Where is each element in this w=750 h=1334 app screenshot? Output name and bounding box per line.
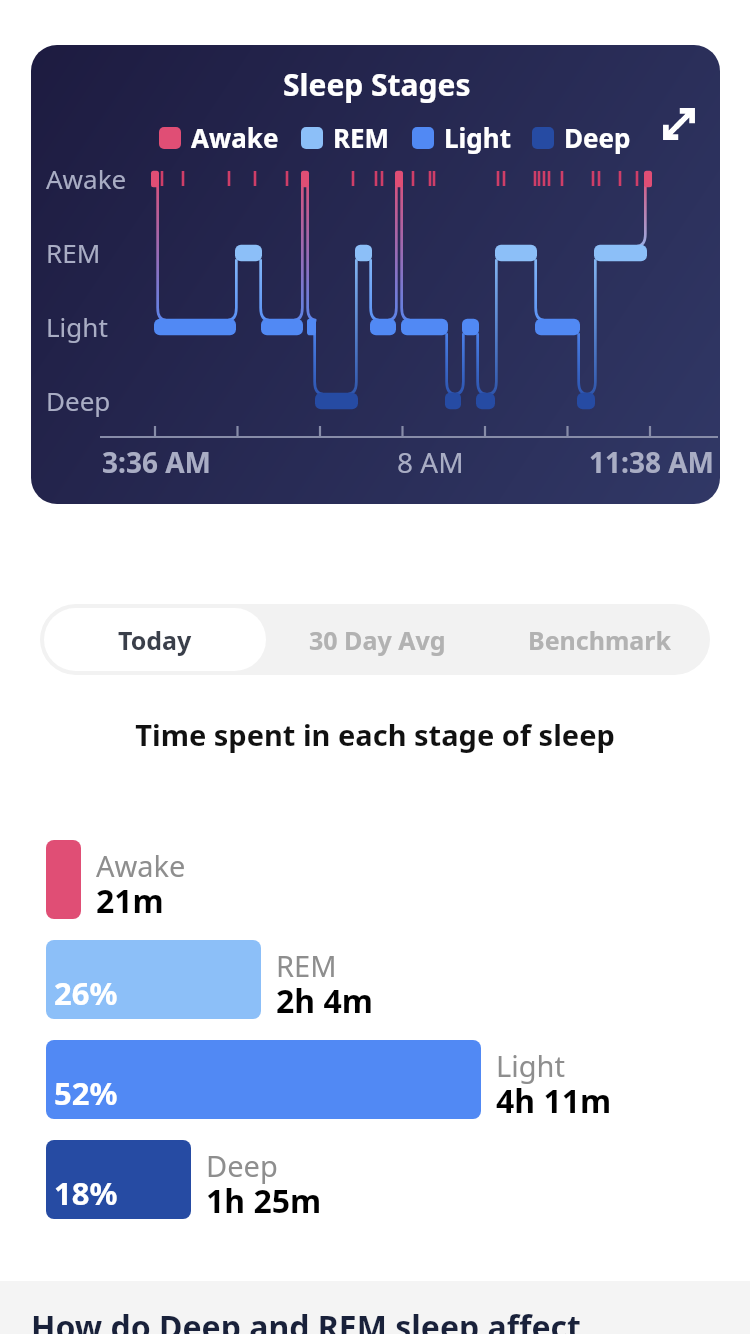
staticText: Awake bbox=[191, 120, 279, 155]
staticText: How do Deep and REM sleep affect bbox=[31, 1305, 581, 1334]
staticText: 52% bbox=[54, 1072, 118, 1114]
staticText: 8 AM bbox=[397, 443, 464, 481]
staticText: Sleep Stages bbox=[283, 64, 471, 105]
button[interactable]: 30 Day Avg bbox=[266, 604, 488, 675]
staticText: Awake bbox=[96, 846, 186, 885]
staticText: 21m bbox=[96, 879, 164, 923]
staticText: 26% bbox=[54, 972, 118, 1014]
staticText: Light bbox=[46, 309, 108, 344]
staticText: 3:36 AM bbox=[102, 443, 211, 481]
staticText: 1h 25m bbox=[206, 1179, 322, 1223]
staticText: Benchmark bbox=[528, 623, 671, 657]
button[interactable]: Expand chart bbox=[656, 101, 702, 147]
staticText: Deep bbox=[46, 383, 111, 418]
staticText: 4h 11m bbox=[496, 1079, 612, 1123]
staticText: Today bbox=[118, 623, 192, 657]
staticText: Light bbox=[496, 1046, 565, 1085]
staticText: Awake bbox=[46, 161, 127, 196]
staticText: REM bbox=[46, 235, 101, 270]
staticText: REM bbox=[276, 946, 337, 985]
button[interactable]: Today bbox=[44, 608, 266, 671]
staticText: Light bbox=[444, 120, 511, 155]
staticText: REM bbox=[333, 120, 390, 155]
button[interactable]: Benchmark bbox=[488, 604, 710, 675]
staticText: Deep bbox=[206, 1146, 278, 1185]
staticText: 30 Day Avg bbox=[309, 623, 446, 657]
staticText: Time spent in each stage of sleep bbox=[0, 715, 750, 754]
staticText: 11:38 AM bbox=[589, 443, 714, 481]
staticText: 2h 4m bbox=[276, 979, 373, 1023]
staticText: Deep bbox=[564, 120, 631, 155]
staticText: 18% bbox=[54, 1172, 118, 1214]
